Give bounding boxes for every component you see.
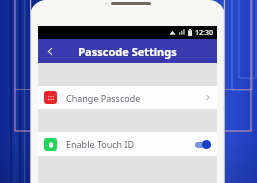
staticText: Enable Touch ID	[66, 138, 135, 150]
button[interactable]: Enable Touch ID toggle	[195, 140, 211, 149]
staticText: 12:30	[195, 28, 213, 38]
staticText: Passcode Settings	[62, 44, 193, 59]
button[interactable]: Change Passcode	[38, 86, 217, 109]
button[interactable]: Enable Touch ID	[38, 132, 217, 156]
button[interactable]: Back	[38, 39, 62, 63]
staticText: Change Passcode	[66, 92, 141, 104]
